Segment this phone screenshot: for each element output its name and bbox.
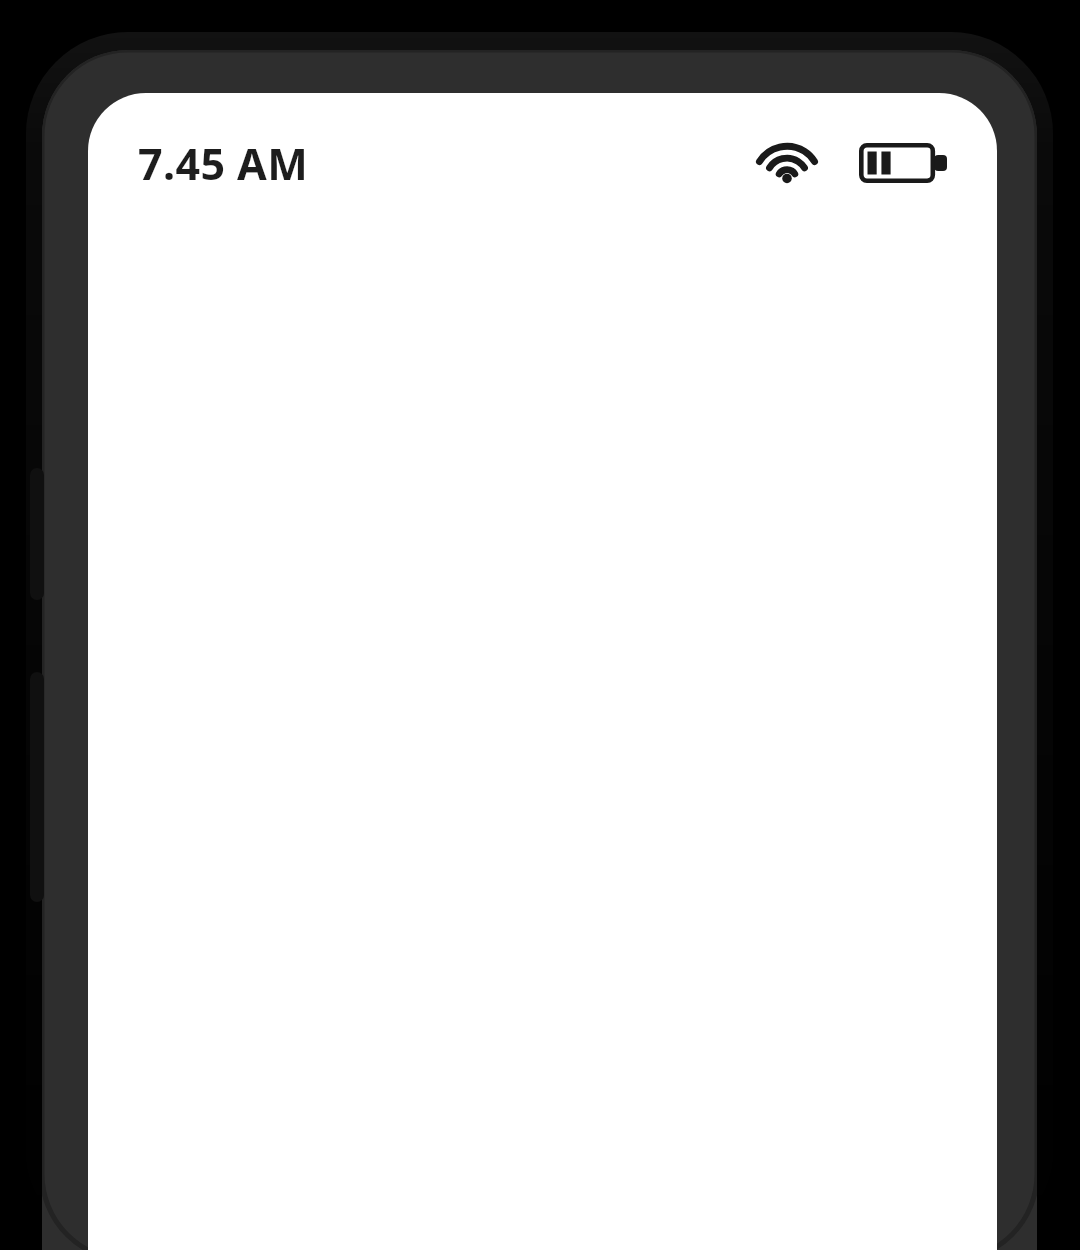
other: Battery 30 percent xyxy=(859,143,947,183)
staticText: 7.45 AM xyxy=(138,134,309,193)
other: Wi-Fi connected xyxy=(761,141,813,185)
